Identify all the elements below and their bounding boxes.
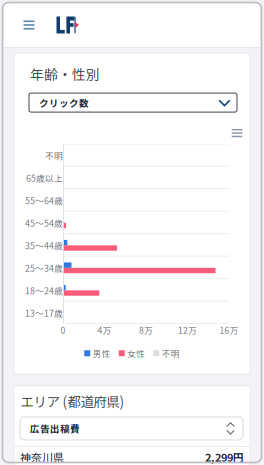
staticText: 35〜44歳 xyxy=(25,239,63,252)
staticText: 2,299円 xyxy=(205,449,244,465)
staticText: 16万 xyxy=(219,324,238,336)
staticText: 8万 xyxy=(139,324,153,336)
staticText: 女性 xyxy=(127,347,145,359)
staticText: 25〜34歳 xyxy=(25,261,63,274)
staticText: 年齢・性別 xyxy=(30,64,100,84)
staticText: 0 xyxy=(60,324,65,336)
button[interactable]: 神奈川県 xyxy=(14,447,250,465)
staticText: 不明 xyxy=(45,149,63,162)
button[interactable]: Chart menu xyxy=(230,127,244,139)
staticText: 18〜24歳 xyxy=(25,284,63,297)
staticText: クリック数 xyxy=(39,96,89,109)
button[interactable]: Menu xyxy=(16,11,42,39)
button[interactable]: 広告出稿費 xyxy=(20,417,243,440)
staticText: 男性 xyxy=(93,347,111,359)
staticText: 55〜64歳 xyxy=(25,194,63,207)
staticText: 不明 xyxy=(162,347,180,359)
staticText: 4万 xyxy=(97,324,111,336)
staticText: 13〜17歳 xyxy=(25,306,63,319)
staticText: 神奈川県 xyxy=(20,449,64,465)
button[interactable]: クリック数 xyxy=(29,93,237,112)
staticText: 65歳以上 xyxy=(26,171,63,184)
staticText: 広告出稿費 xyxy=(30,421,80,435)
staticText: 12万 xyxy=(178,324,197,336)
staticText: 45〜54歳 xyxy=(25,216,63,229)
staticText: エリア (都道府県) xyxy=(20,391,124,411)
